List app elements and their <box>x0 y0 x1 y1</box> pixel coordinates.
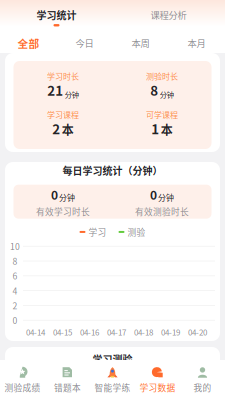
staticText: 智能学练 <box>94 381 130 394</box>
staticText: 测验成绩 <box>4 381 40 394</box>
staticText: 有效学习时长 <box>36 205 90 218</box>
staticText: 04-14 <box>26 326 45 338</box>
staticText: 04-19 <box>161 326 180 338</box>
button[interactable]: 智能学练 <box>90 360 135 400</box>
staticText: 测验 <box>127 226 145 238</box>
staticText: 本月 <box>187 36 205 50</box>
staticText: 本周 <box>131 36 149 50</box>
staticText: 2 <box>12 299 17 312</box>
staticText: 学习数据 <box>139 381 175 394</box>
staticText: 04-18 <box>134 326 153 338</box>
staticText: 8 <box>12 255 17 267</box>
staticText: 6 <box>12 269 17 282</box>
staticText: 分钟 <box>65 89 79 100</box>
staticText: 04-15 <box>53 326 72 338</box>
button[interactable]: 我的 <box>180 360 225 400</box>
staticText: 04-20 <box>188 326 207 338</box>
staticText: 1 <box>151 119 159 138</box>
staticText: 分钟 <box>160 89 174 100</box>
staticText: 0 <box>150 186 157 203</box>
staticText: 全部 <box>17 35 39 51</box>
staticText: 学习时长 <box>47 70 79 82</box>
button[interactable]: 学习统计 <box>0 5 112 29</box>
staticText: 本 <box>161 121 173 138</box>
staticText: 每日学习统计（分钟） <box>62 163 162 178</box>
staticText: 错题本 <box>54 381 81 394</box>
staticText: 21 <box>47 80 63 100</box>
staticText: 8 <box>150 80 158 100</box>
staticText: 可学课程 <box>146 109 178 120</box>
staticText: 学习 <box>88 226 106 238</box>
button[interactable]: 测验成绩 <box>0 360 45 400</box>
staticText: 测验时长 <box>146 70 178 82</box>
staticText: 本 <box>62 121 74 138</box>
button[interactable]: 全部 <box>0 33 56 53</box>
staticText: 0 <box>12 314 17 326</box>
staticText: 04-16 <box>80 326 99 338</box>
button[interactable]: 今日 <box>56 33 112 53</box>
staticText: 4 <box>12 284 17 297</box>
staticText: 04-17 <box>107 326 126 338</box>
staticText: 学习测验 <box>92 352 132 366</box>
staticText: 我的 <box>193 381 211 394</box>
staticText: 0 <box>51 186 58 203</box>
button[interactable]: 学习数据 <box>135 360 180 400</box>
staticText: 10 <box>10 240 20 252</box>
staticText: 分钟 <box>158 191 174 203</box>
staticText: 今日 <box>75 36 93 50</box>
staticText: 2 <box>52 119 60 138</box>
staticText: 分钟 <box>59 191 75 203</box>
button[interactable]: 课程分析 <box>112 5 224 29</box>
button[interactable]: 错题本 <box>45 360 90 400</box>
staticText: 学习课程 <box>47 109 79 120</box>
staticText: 有效测验时长 <box>135 205 189 218</box>
staticText: 课程分析 <box>150 8 186 21</box>
staticText: 学习统计 <box>36 8 76 22</box>
button[interactable]: 本月 <box>168 33 224 53</box>
button[interactable]: 本周 <box>112 33 168 53</box>
